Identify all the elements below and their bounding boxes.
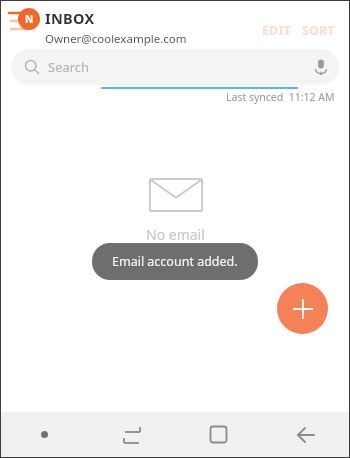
- button[interactable]: Email account added.: [92, 243, 258, 280]
- button[interactable]: Notifications: [1, 412, 88, 457]
- staticText: INBOX: [45, 8, 95, 28]
- staticText: Search: [48, 58, 90, 76]
- button[interactable]: Menu: [9, 8, 41, 36]
- staticText: No email: [146, 225, 205, 244]
- button[interactable]: Voice search: [306, 52, 336, 82]
- button[interactable]: SORT: [297, 17, 341, 43]
- staticText: EDIT: [262, 22, 292, 38]
- button[interactable]: Search: [11, 49, 339, 85]
- button[interactable]: Compose new email: [277, 283, 328, 334]
- staticText: SORT: [302, 22, 336, 38]
- button[interactable]: Home: [175, 412, 262, 457]
- staticText: Owner@coolexample.com: [45, 31, 187, 47]
- button[interactable]: Back: [262, 412, 349, 457]
- staticText: Last synced 11:12 AM: [226, 90, 335, 104]
- staticText: N: [25, 12, 34, 26]
- button[interactable]: EDIT: [257, 17, 297, 43]
- button[interactable]: Recent apps: [88, 412, 175, 457]
- staticText: Email account added.: [112, 253, 238, 270]
